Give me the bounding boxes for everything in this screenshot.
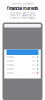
staticText: Online brokers [12, 2, 33, 5]
staticText: financial markets [7, 6, 38, 11]
staticText: Lorem ipsum dolor sit amet [9, 12, 35, 14]
staticText: consectetur adipiscing elit sed [9, 14, 35, 17]
staticText: do eiusmod tempor incididunt [9, 17, 35, 19]
